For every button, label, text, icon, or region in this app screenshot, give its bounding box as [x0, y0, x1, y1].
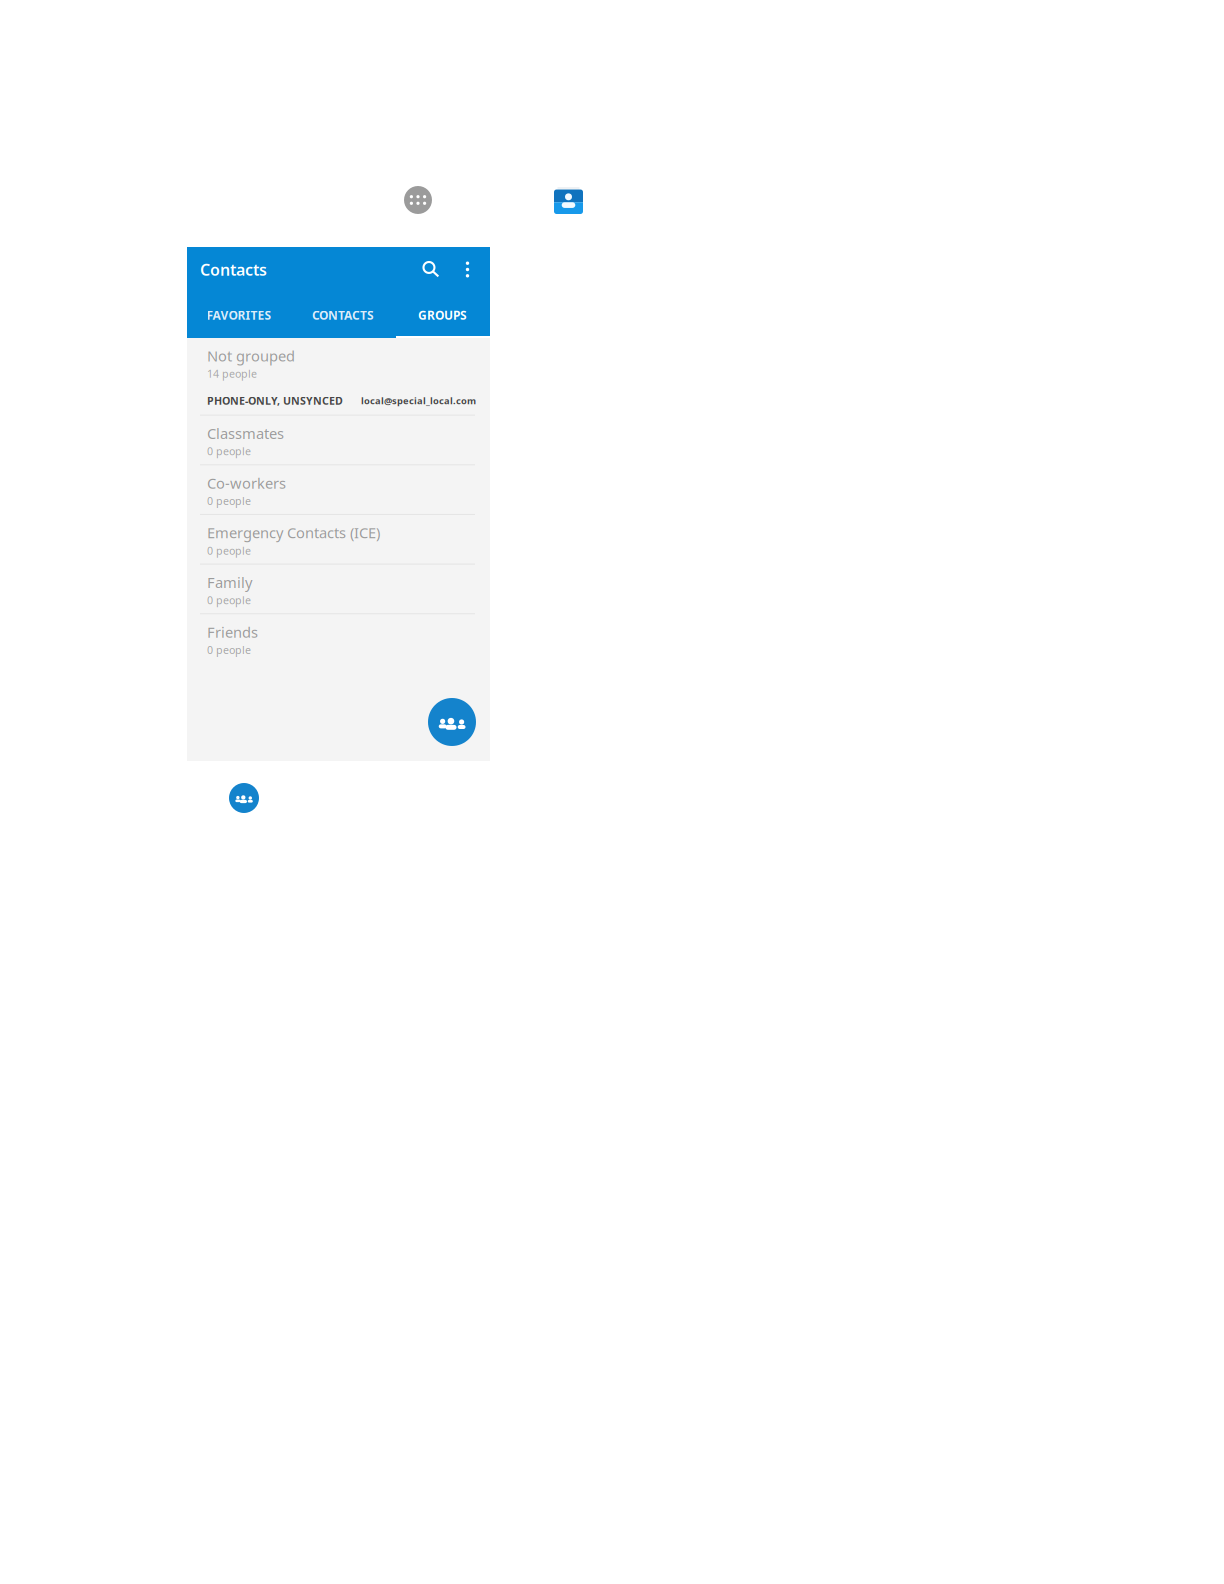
- button[interactable]: New group: [229, 783, 259, 813]
- staticText: Family: [207, 573, 252, 592]
- staticText: Not grouped: [207, 346, 295, 365]
- button[interactable]: Emergency Contacts (ICE): [187, 515, 490, 563]
- staticText: GROUPS: [418, 307, 467, 323]
- staticText: 0 people: [207, 543, 251, 558]
- button[interactable]: All apps: [404, 186, 432, 214]
- button[interactable]: Co-workers: [187, 465, 490, 514]
- staticText: Co-workers: [207, 473, 286, 493]
- button[interactable]: Not grouped: [187, 338, 490, 387]
- staticText: 0 people: [207, 494, 251, 508]
- staticText: FAVORITES: [206, 307, 271, 323]
- staticText: 0 people: [207, 593, 251, 607]
- staticText: CONTACTS: [312, 307, 374, 323]
- staticText: PHONE-ONLY, UNSYNCED: [207, 394, 343, 408]
- staticText: Contacts: [200, 259, 267, 280]
- button[interactable]: Classmates: [187, 416, 490, 464]
- staticText: Emergency Contacts (ICE): [207, 523, 380, 542]
- button[interactable]: New group: [428, 698, 476, 746]
- button[interactable]: Search: [409, 254, 453, 284]
- staticText: 14 people: [207, 366, 257, 381]
- button[interactable]: GROUPS: [395, 292, 490, 338]
- button[interactable]: Family: [187, 565, 490, 613]
- staticText: 0 people: [207, 444, 251, 458]
- staticText: Friends: [207, 622, 258, 642]
- button[interactable]: Contacts app: [554, 187, 583, 214]
- button[interactable]: CONTACTS: [291, 292, 395, 338]
- staticText: 0 people: [207, 643, 251, 657]
- staticText: local@special_local.com: [361, 394, 476, 407]
- button[interactable]: FAVORITES: [187, 292, 291, 338]
- button[interactable]: More options: [453, 254, 482, 284]
- staticText: Classmates: [207, 424, 284, 443]
- button[interactable]: Friends: [187, 614, 490, 663]
